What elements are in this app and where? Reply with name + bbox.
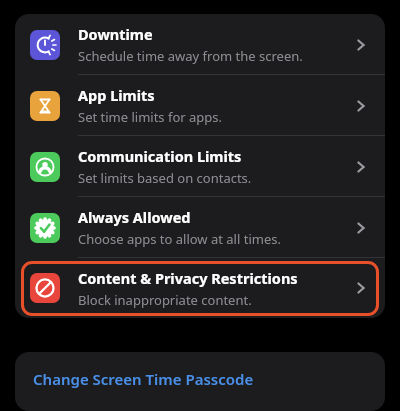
staticText: Set limits based on contacts. — [78, 169, 252, 187]
staticText: Communication Limits — [78, 146, 242, 166]
other: App Limits — [349, 94, 373, 118]
staticText: Choose apps to allow at all times. — [78, 230, 281, 248]
staticText: App Limits — [78, 85, 155, 105]
other: Downtime — [349, 33, 373, 57]
staticText: Downtime — [78, 24, 153, 44]
button[interactable]: Downtime — [15, 14, 385, 75]
button[interactable]: Communication Limits — [15, 136, 385, 197]
staticText: Block inappropriate content. — [78, 291, 252, 309]
other: Communication Limits — [349, 155, 373, 179]
other: Always Allowed — [349, 216, 373, 240]
button[interactable]: App Limits — [15, 75, 385, 136]
button[interactable]: Content & Privacy Restrictions — [15, 258, 385, 318]
staticText: Content & Privacy Restrictions — [78, 268, 298, 288]
staticText: Schedule time away from the screen. — [78, 47, 303, 65]
staticText: Change Screen Time Passcode — [33, 369, 254, 389]
staticText: Set time limits for apps. — [78, 108, 223, 126]
button[interactable]: Change Screen Time Passcode — [15, 352, 385, 411]
button[interactable]: Always Allowed — [15, 197, 385, 258]
other: Content & Privacy Restrictions — [349, 276, 373, 300]
staticText: Always Allowed — [78, 207, 191, 227]
